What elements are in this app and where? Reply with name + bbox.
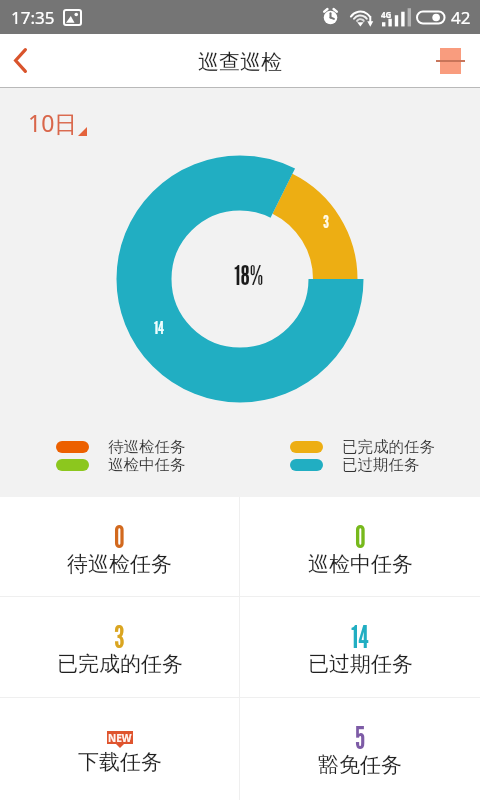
staticText: 下载任务 xyxy=(78,749,162,775)
staticText: 3 xyxy=(114,619,125,655)
button[interactable]: 3 xyxy=(0,597,239,697)
staticText: 5 xyxy=(355,720,366,756)
button[interactable]: 10日 xyxy=(24,103,91,142)
staticText: 已完成的任务 xyxy=(342,437,435,457)
staticText: 已完成的任务 xyxy=(57,651,183,677)
staticText: 待巡检任务 xyxy=(67,551,172,577)
staticText: 豁免任务 xyxy=(318,752,402,778)
staticText: 巡查巡检 xyxy=(198,49,282,75)
button[interactable]: 巡检中任务 xyxy=(56,455,186,475)
staticText: 0 xyxy=(114,519,125,555)
button[interactable]: 0 xyxy=(0,497,239,596)
staticText: 14 xyxy=(154,318,165,338)
staticText: 18% xyxy=(234,259,264,291)
button[interactable]: 14 xyxy=(240,597,480,697)
staticText: 42 xyxy=(451,6,471,29)
button[interactable]: 待巡检任务 xyxy=(56,437,186,457)
staticText: 待巡检任务 xyxy=(108,437,186,457)
button[interactable]: 已过期任务 xyxy=(290,455,420,475)
staticText: 14 xyxy=(351,619,369,655)
button[interactable]: 已完成的任务 xyxy=(290,437,435,457)
staticText: 已过期任务 xyxy=(308,651,413,677)
button[interactable]: 0 xyxy=(240,497,480,596)
button[interactable]: Back xyxy=(0,34,41,87)
staticText: 已过期任务 xyxy=(342,455,420,475)
button[interactable]: 5 xyxy=(240,698,480,800)
staticText: 0 xyxy=(355,519,366,555)
staticText: NEW xyxy=(108,731,132,744)
staticText: 3 xyxy=(323,212,329,232)
staticText: 巡检中任务 xyxy=(108,455,186,475)
button[interactable]: More options xyxy=(421,34,480,87)
staticText: 巡检中任务 xyxy=(308,551,413,577)
staticText: 4G xyxy=(381,9,392,20)
button[interactable]: NEW xyxy=(0,698,239,800)
staticText: 10日 xyxy=(28,107,78,138)
staticText: 17:35 xyxy=(11,6,55,29)
